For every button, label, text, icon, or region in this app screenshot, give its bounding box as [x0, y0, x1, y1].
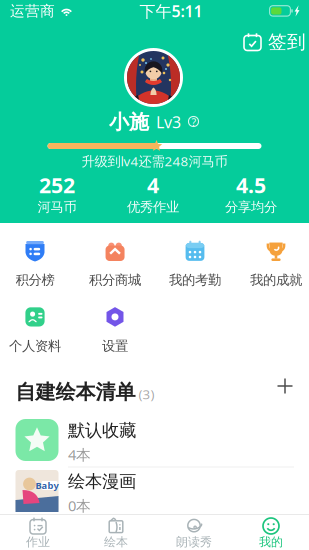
staticText: 4.5 [236, 171, 266, 199]
staticText: 4 [147, 171, 159, 199]
button[interactable]: 4.5 [203, 176, 299, 216]
staticText: ? [191, 115, 196, 129]
staticText: 绘本 [104, 535, 128, 549]
button[interactable]: 我的成就 [239, 240, 309, 288]
button[interactable]: 设置 [78, 306, 152, 354]
button[interactable]: 作业 [1, 516, 75, 550]
staticText: 自建绘本清单 [15, 380, 135, 404]
button[interactable]: Level info [188, 116, 200, 128]
staticText: 我的考勤 [169, 272, 221, 288]
staticText: 252 [39, 171, 75, 199]
staticText: 我的成就 [250, 272, 302, 288]
staticText: (3) [135, 385, 154, 403]
staticText: 0本 [68, 496, 91, 515]
staticText: 升级到lv4还需248河马币 [81, 152, 227, 170]
button[interactable]: 4 [105, 176, 201, 216]
staticText: 优秀作业 [127, 199, 179, 215]
staticText: 积分商城 [89, 272, 141, 288]
button[interactable]: 我的 [234, 516, 308, 550]
staticText: 分享均分 [225, 199, 277, 215]
staticText: 下午5:11 [139, 0, 202, 22]
button[interactable]: 朗读秀 [157, 516, 231, 550]
staticText: 我的 [259, 535, 283, 549]
staticText: 设置 [102, 338, 128, 354]
button[interactable]: 签到 [243, 31, 309, 53]
staticText: 小施 [109, 110, 149, 134]
button[interactable]: 默认收藏 [0, 414, 309, 465]
staticText: Baby [35, 479, 58, 492]
staticText: 默认收藏 [68, 420, 136, 441]
button[interactable]: 我的考勤 [158, 240, 232, 288]
button[interactable]: Add list [275, 376, 305, 406]
staticText: 绘本漫画 [68, 471, 136, 492]
staticText: 4本 [68, 445, 91, 464]
staticText: 作业 [26, 535, 50, 549]
staticText: 个人资料 [9, 338, 61, 354]
staticText: 运营商 [10, 2, 55, 20]
staticText: 河马币 [37, 199, 76, 215]
button[interactable]: 积分榜 [0, 240, 72, 288]
button[interactable]: 252 [9, 176, 105, 216]
staticText: Lv3 [156, 111, 181, 133]
button[interactable]: Baby [0, 465, 309, 516]
button[interactable]: 个人资料 [0, 306, 72, 354]
button[interactable]: Profile photo [124, 48, 183, 107]
button[interactable]: 绘本 [79, 516, 153, 550]
button[interactable]: 积分商城 [78, 240, 152, 288]
staticText: 积分榜 [15, 272, 54, 288]
staticText: 朗读秀 [176, 535, 212, 549]
staticText: 签到 [268, 30, 306, 53]
